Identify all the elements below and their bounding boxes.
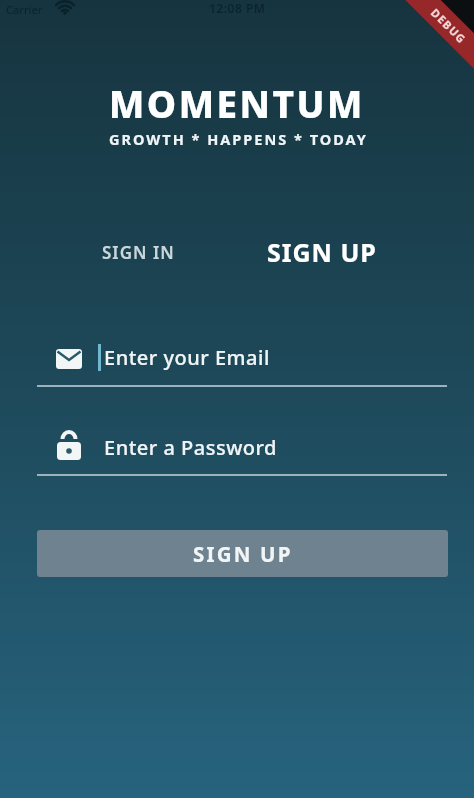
button[interactable]: SIGN IN <box>68 230 208 274</box>
staticText: SIGN UP <box>267 235 377 269</box>
button[interactable]: Enter your Email <box>37 338 448 388</box>
staticText: Enter a Password <box>104 434 278 461</box>
staticText: Enter your Email <box>104 344 270 371</box>
staticText: SIGN IN <box>102 241 175 264</box>
staticText: GROWTH * HAPPENS * TODAY <box>109 129 368 149</box>
staticText: 12:08 PM <box>209 0 266 16</box>
staticText: DEBUG <box>428 5 470 47</box>
button[interactable]: Enter a Password <box>37 428 448 478</box>
staticText: MOMENTUM <box>109 78 365 128</box>
button[interactable]: SIGN UP <box>37 530 448 577</box>
staticText: SIGN UP <box>193 540 293 568</box>
button[interactable]: SIGN UP <box>242 228 402 276</box>
staticText: Carrier <box>6 2 43 17</box>
